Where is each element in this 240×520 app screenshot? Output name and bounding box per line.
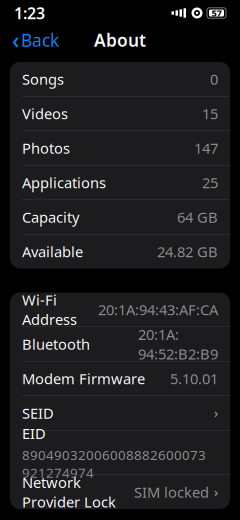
staticText: 25 xyxy=(202,173,218,192)
staticText: 24.82 GB xyxy=(157,242,218,261)
staticText: 89049032006008882600073921274974 xyxy=(22,446,206,481)
button[interactable]: Bluetooth xyxy=(10,327,230,361)
staticText: 20:1A:94:43:AF:CA xyxy=(98,300,218,319)
staticText: SEID xyxy=(22,403,54,423)
staticText: EID xyxy=(22,424,46,443)
staticText: 147 xyxy=(194,138,218,158)
button[interactable]: SEID xyxy=(10,396,230,430)
staticText: 0 xyxy=(210,69,218,89)
button[interactable]: EID xyxy=(10,430,230,474)
staticText: ‹ xyxy=(12,25,19,55)
staticText: 5.10.01 xyxy=(170,369,218,388)
staticText: Network Provider Lock xyxy=(22,472,116,511)
button[interactable]: Network Provider Lock xyxy=(10,475,230,509)
button[interactable]: Videos xyxy=(10,96,230,130)
staticText: Wi-Fi Address xyxy=(22,290,77,329)
staticText: › xyxy=(214,484,218,500)
staticText: About xyxy=(94,28,146,51)
staticText: Videos xyxy=(22,104,68,123)
button[interactable]: Capacity xyxy=(10,200,230,234)
staticText: Modem Firmware xyxy=(22,369,145,388)
button[interactable]: Available xyxy=(10,234,230,268)
staticText: SIM locked xyxy=(134,482,209,502)
button[interactable]: Photos xyxy=(10,131,230,165)
staticText: Back xyxy=(21,28,59,51)
staticText: › xyxy=(214,405,218,421)
button[interactable]: Modem Firmware xyxy=(10,361,230,395)
button[interactable]: Wi-Fi Address xyxy=(10,292,230,326)
button[interactable]: Songs xyxy=(10,62,230,96)
staticText: Bluetooth xyxy=(22,334,90,354)
staticText: 20:1A:94:52:B2:B9 xyxy=(138,324,218,363)
staticText: Photos xyxy=(22,138,70,158)
staticText: Applications xyxy=(22,173,106,192)
staticText: Capacity xyxy=(22,207,79,227)
button[interactable]: ‹ xyxy=(4,21,67,59)
staticText: 1:23 xyxy=(14,2,45,24)
staticText: 57 xyxy=(211,7,221,19)
staticText: Available xyxy=(22,242,83,261)
button[interactable]: Applications xyxy=(10,165,230,199)
staticText: Songs xyxy=(22,69,64,89)
staticText: 15 xyxy=(202,104,218,123)
staticText: 64 GB xyxy=(177,207,218,227)
